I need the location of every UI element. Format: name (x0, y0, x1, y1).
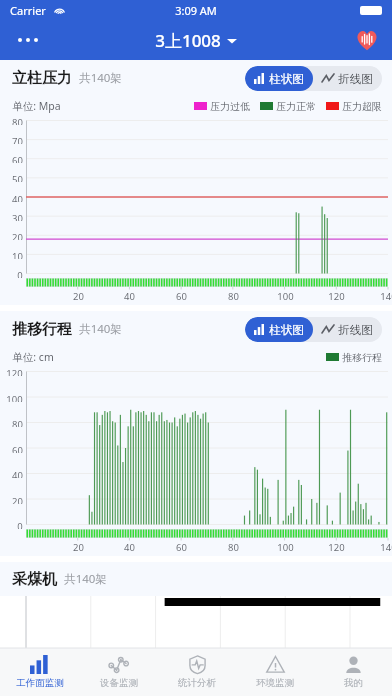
staticText: 40 (12, 193, 23, 202)
staticText: 立柱压力 (12, 69, 72, 88)
staticText: 60 (12, 444, 23, 453)
staticText: 折线图 (338, 323, 373, 337)
staticText: 140 (380, 290, 392, 303)
staticText: 共140架 (64, 571, 107, 587)
staticText: 推移行程 (342, 351, 382, 364)
staticText: 压力过低 (210, 100, 250, 113)
staticText: 120 (328, 290, 345, 303)
button[interactable]: 柱状图 (245, 66, 313, 91)
staticText: 0 (17, 269, 23, 278)
staticText: 20 (73, 541, 84, 554)
staticText: 20 (73, 290, 84, 303)
staticText: 我的 (344, 677, 363, 689)
staticText: 统计分析 (178, 677, 216, 689)
staticText: 3:09 AM (175, 3, 217, 18)
staticText: 80 (12, 418, 23, 427)
staticText: 采煤机 (12, 570, 57, 589)
staticText: 80 (12, 116, 23, 125)
staticText: 折线图 (338, 72, 373, 86)
staticText: 60 (176, 541, 187, 554)
staticText: 100 (277, 290, 294, 303)
button[interactable]: 我的 (314, 648, 392, 696)
staticText: 柱状图 (269, 323, 304, 337)
staticText: Carrier (10, 3, 46, 18)
staticText: 50 (12, 173, 23, 182)
staticText: 120 (6, 367, 23, 376)
button[interactable]: 折线图 (313, 317, 382, 342)
staticText: 30 (12, 212, 23, 221)
staticText: 20 (12, 495, 23, 504)
staticText: 设备监测 (100, 677, 138, 689)
staticText: 单位: cm (12, 350, 54, 364)
staticText: 0 (17, 520, 23, 529)
staticText: 单位: Mpa (12, 99, 61, 113)
button[interactable]: 环境监测 (236, 648, 314, 696)
staticText: 40 (124, 290, 135, 303)
button[interactable]: Heartbeat monitor (352, 25, 382, 55)
button[interactable]: 工作面监测 (0, 648, 79, 696)
staticText: 工作面监测 (16, 677, 64, 689)
staticText: 共140架 (79, 70, 122, 86)
staticText: 环境监测 (256, 677, 294, 689)
staticText: 100 (277, 541, 294, 554)
staticText: 120 (328, 541, 345, 554)
staticText: 共140架 (79, 321, 122, 337)
staticText: 40 (124, 541, 135, 554)
staticText: 压力超限 (342, 100, 382, 113)
button[interactable]: 设备监测 (79, 648, 158, 696)
staticText: 推移行程 (12, 320, 72, 339)
button[interactable]: 统计分析 (158, 648, 236, 696)
staticText: 140 (380, 541, 392, 554)
button[interactable]: 柱状图 (245, 317, 313, 342)
staticText: 压力正常 (276, 100, 316, 113)
staticText: 柱状图 (269, 72, 304, 86)
staticText: 80 (228, 541, 239, 554)
staticText: 40 (12, 469, 23, 478)
staticText: 80 (228, 290, 239, 303)
staticText: 20 (12, 231, 23, 240)
staticText: 100 (6, 393, 23, 402)
staticText: 60 (176, 290, 187, 303)
staticText: 60 (12, 154, 23, 163)
button[interactable]: 折线图 (313, 66, 382, 91)
staticText: 3上1008 (155, 29, 221, 52)
button[interactable]: 3上1008 (155, 29, 237, 52)
staticText: 70 (12, 135, 23, 144)
button[interactable]: More options (8, 20, 48, 60)
staticText: 10 (12, 250, 23, 259)
